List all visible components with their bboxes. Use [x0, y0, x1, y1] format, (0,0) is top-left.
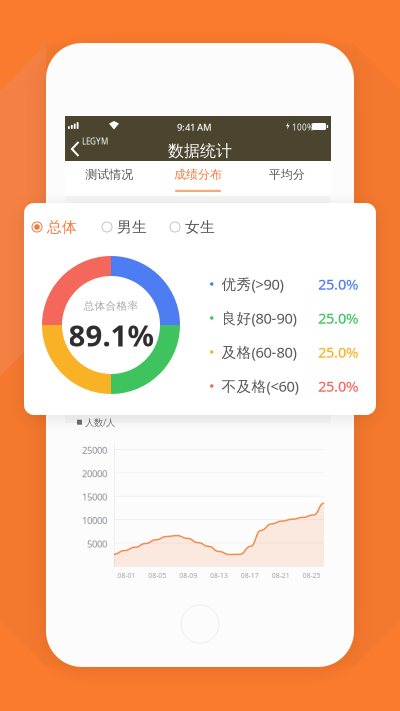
staticText: 25.0% [318, 376, 358, 396]
staticText: 成绩分布 [174, 167, 222, 182]
staticText: 男生 [117, 218, 147, 236]
button[interactable]: 男生 [102, 218, 147, 236]
staticText: LEGYM [82, 136, 108, 147]
staticText: 100% [292, 122, 314, 133]
button[interactable]: 成绩分布 [154, 161, 242, 196]
staticText: 测试情况 [85, 167, 133, 182]
staticText: 总体合格率 [83, 299, 138, 313]
staticText: 08-25 [303, 571, 321, 580]
staticText: 89.1% [68, 316, 153, 355]
staticText: 良好(80-90) [221, 308, 296, 328]
staticText: 总体 [47, 218, 77, 236]
button[interactable]: 平均分 [242, 161, 331, 196]
staticText: 数据统计 [168, 141, 232, 161]
staticText: 女生 [185, 218, 215, 236]
staticText: 及格(60-80) [221, 342, 296, 362]
button[interactable]: 测试情况 [65, 161, 154, 196]
staticText: 08-09 [179, 571, 197, 580]
staticText: 25.0% [318, 342, 358, 362]
staticText: 优秀(>90) [221, 274, 283, 294]
staticText: 08-21 [272, 571, 290, 580]
staticText: 08-13 [210, 571, 228, 580]
staticText: 20000 [82, 467, 107, 480]
staticText: 5000 [87, 538, 107, 550]
staticText: 25000 [82, 444, 107, 456]
staticText: 10000 [82, 514, 107, 527]
staticText: 15000 [82, 491, 107, 503]
staticText: 08-17 [241, 571, 259, 580]
staticText: 08-01 [117, 571, 135, 580]
button[interactable]: 女生 [170, 218, 215, 236]
button[interactable]: LEGYM [65, 136, 115, 161]
staticText: 25.0% [318, 274, 358, 294]
staticText: 08-05 [148, 571, 166, 580]
staticText: 25.0% [318, 308, 358, 328]
staticText: 人数/人 [85, 416, 115, 428]
staticText: 9:41 AM [177, 121, 212, 133]
button[interactable]: 总体 [32, 218, 77, 236]
staticText: 平均分 [269, 167, 305, 182]
staticText: 不及格(<60) [221, 376, 298, 396]
